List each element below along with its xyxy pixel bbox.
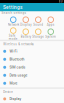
staticText: System <box>45 35 56 38</box>
button[interactable]: Display <box>19 16 32 28</box>
staticText: 4:07 <box>58 0 62 3</box>
staticText: Storage <box>32 35 44 38</box>
staticText: SIM cards <box>10 65 26 69</box>
staticText: Battery <box>21 35 31 38</box>
staticText: Search settings <box>2 11 27 15</box>
button[interactable]: Wi-Fi <box>0 47 64 55</box>
button[interactable]: Sound <box>32 16 44 28</box>
staticText: Safe mode <box>9 34 18 41</box>
staticText: More <box>10 81 18 85</box>
button[interactable]: Apps <box>44 16 57 28</box>
button[interactable]: Storage <box>32 28 44 40</box>
staticText: Device <box>3 90 13 94</box>
button[interactable]: Safe mode <box>7 28 19 40</box>
staticText: Display <box>10 97 22 101</box>
button[interactable]: Display <box>0 95 64 103</box>
staticText: Apps <box>47 23 55 26</box>
button[interactable]: Data usage <box>0 71 64 79</box>
button[interactable]: Network <box>7 16 19 28</box>
button[interactable]: SIM cards <box>0 63 64 71</box>
staticText: Display <box>20 23 31 26</box>
button[interactable]: Bluetooth <box>0 55 64 63</box>
staticText: Wi-Fi <box>10 49 18 53</box>
button[interactable]: Battery <box>19 28 32 40</box>
staticText: Settings <box>3 4 22 10</box>
staticText: Data usage <box>10 73 28 77</box>
staticText: Wireless & networks <box>3 43 34 46</box>
staticText: Sound <box>33 23 43 26</box>
button[interactable]: More <box>0 79 64 87</box>
staticText: Bluetooth <box>10 57 25 61</box>
button[interactable]: System <box>44 28 57 40</box>
staticText: Network <box>8 23 19 26</box>
